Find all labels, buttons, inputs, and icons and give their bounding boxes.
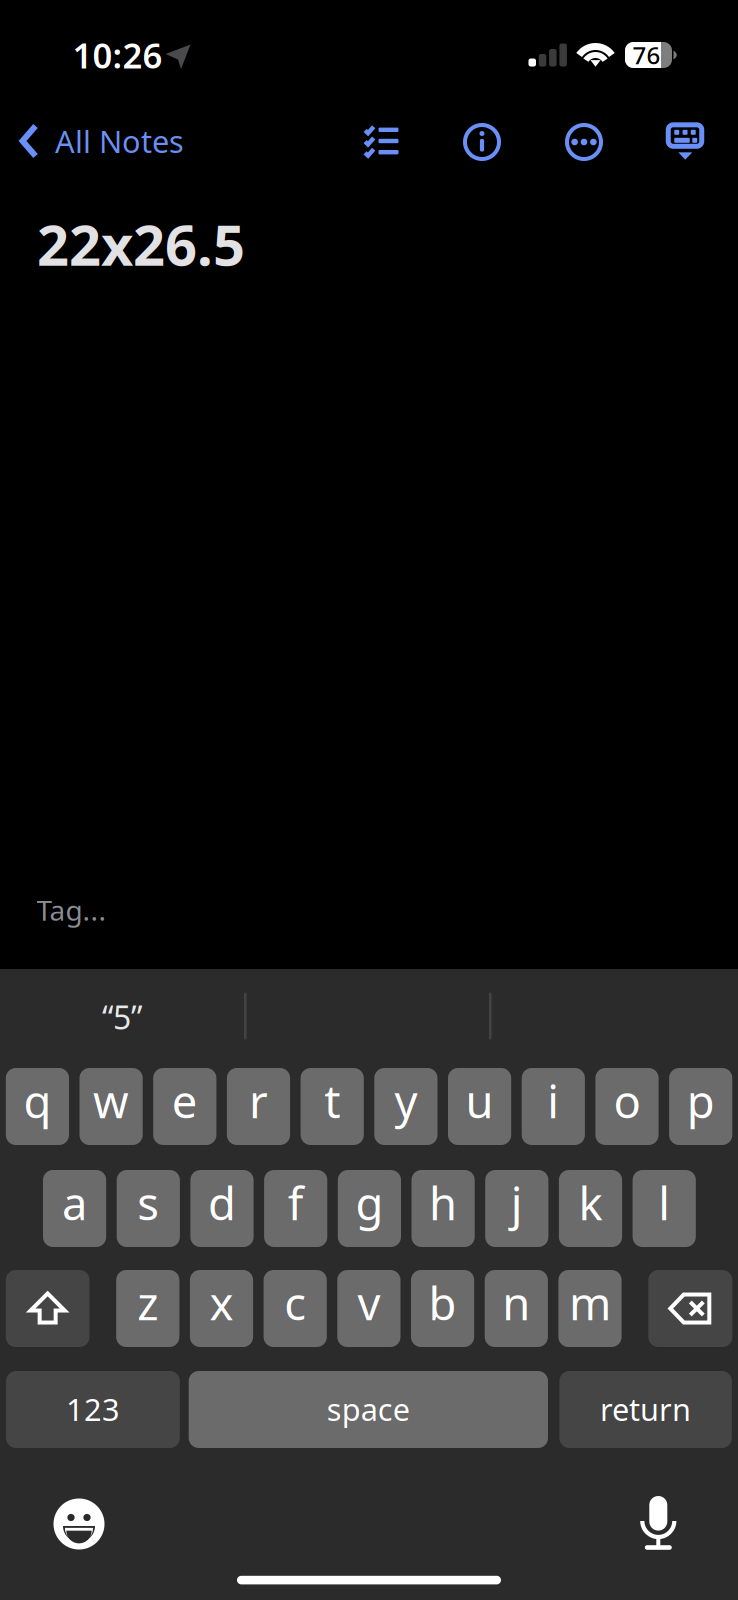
button[interactable]: Dictate <box>639 1496 677 1550</box>
staticText: n <box>502 1273 530 1333</box>
staticText: return <box>600 1389 691 1429</box>
staticText: r <box>249 1071 268 1131</box>
button[interactable]: b <box>411 1270 474 1347</box>
button[interactable]: More options <box>549 111 619 173</box>
button[interactable]: z <box>116 1270 179 1347</box>
staticText: e <box>172 1071 198 1131</box>
staticText: v <box>357 1273 380 1333</box>
staticText: 123 <box>66 1389 120 1429</box>
staticText: j <box>511 1173 523 1233</box>
staticText: space <box>327 1389 410 1429</box>
staticText: b <box>429 1273 457 1333</box>
staticText: 10:26 <box>72 32 162 78</box>
button[interactable]: r <box>227 1068 290 1145</box>
staticText: m <box>569 1273 611 1333</box>
button[interactable]: y <box>374 1068 437 1145</box>
staticText: x <box>209 1273 233 1333</box>
staticText: g <box>355 1173 383 1233</box>
staticText: k <box>578 1173 602 1233</box>
button[interactable]: v <box>337 1270 400 1347</box>
button[interactable]: s <box>117 1170 180 1247</box>
staticText: z <box>137 1273 158 1333</box>
staticText: o <box>613 1071 640 1131</box>
button[interactable]: n <box>485 1270 548 1347</box>
staticText: q <box>23 1071 51 1131</box>
button[interactable]: q <box>6 1068 69 1145</box>
staticText: w <box>93 1071 129 1131</box>
staticText: Tag... <box>36 891 106 929</box>
button[interactable]: c <box>264 1270 327 1347</box>
button[interactable]: k <box>559 1170 622 1247</box>
staticText: c <box>284 1273 306 1333</box>
button[interactable]: f <box>264 1170 327 1247</box>
staticText: l <box>658 1173 670 1233</box>
button[interactable]: i <box>522 1068 585 1145</box>
button[interactable]: Shift <box>6 1270 89 1347</box>
button[interactable]: o <box>595 1068 659 1145</box>
staticText: y <box>394 1071 417 1131</box>
staticText: s <box>137 1173 159 1233</box>
button[interactable]: space <box>189 1371 548 1448</box>
button[interactable]: return <box>559 1371 732 1448</box>
staticText: 76 <box>632 39 660 71</box>
button[interactable]: j <box>485 1170 548 1247</box>
button[interactable]: h <box>411 1170 475 1247</box>
staticText: “5” <box>102 996 142 1038</box>
staticText: a <box>62 1173 87 1233</box>
staticText: u <box>466 1071 494 1131</box>
button[interactable]: Info <box>447 111 517 173</box>
button[interactable]: 123 <box>6 1371 180 1448</box>
button[interactable]: Hide Keyboard <box>650 110 720 172</box>
staticText: f <box>288 1173 304 1233</box>
button[interactable]: All Notes <box>0 110 190 172</box>
button[interactable]: Emoji keyboard <box>53 1498 104 1549</box>
button[interactable]: Checklist <box>346 109 416 171</box>
button[interactable]: d <box>190 1170 254 1247</box>
button[interactable]: u <box>448 1068 511 1145</box>
staticText: h <box>429 1173 457 1233</box>
staticText: i <box>547 1071 559 1131</box>
button[interactable]: a <box>43 1170 106 1247</box>
button[interactable]: Delete <box>648 1270 732 1347</box>
staticText: 22x26.5 <box>37 207 245 281</box>
button[interactable]: p <box>669 1068 732 1145</box>
button[interactable]: t <box>301 1068 364 1145</box>
button[interactable]: e <box>153 1068 216 1145</box>
button[interactable]: l <box>633 1170 696 1247</box>
button[interactable]: m <box>558 1270 622 1347</box>
button[interactable]: x <box>190 1270 253 1347</box>
staticText: p <box>687 1071 715 1131</box>
staticText: All Notes <box>55 121 184 161</box>
button[interactable]: g <box>338 1170 401 1247</box>
staticText: d <box>208 1173 236 1233</box>
staticText: t <box>324 1071 340 1131</box>
button[interactable]: w <box>79 1068 143 1145</box>
